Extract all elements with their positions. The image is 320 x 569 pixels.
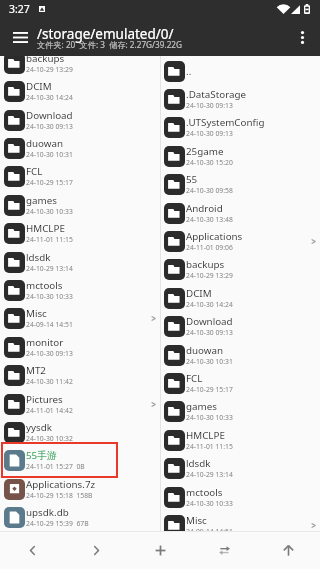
staticText: 24-10-30 13:48 bbox=[186, 215, 233, 224]
button[interactable]: Open navigation menu bbox=[3, 20, 37, 54]
staticText: backups bbox=[186, 258, 225, 271]
button[interactable]: monitor bbox=[0, 333, 160, 361]
button[interactable]: ldsdk bbox=[161, 454, 320, 482]
staticText: 24-10-30 09:13 bbox=[186, 328, 233, 337]
button[interactable]: yysdk bbox=[0, 418, 160, 446]
staticText: mctools bbox=[26, 279, 63, 292]
staticText: 24-10-30 14:24 bbox=[186, 300, 233, 309]
button[interactable]: .UTSystemConfig bbox=[161, 113, 320, 141]
button[interactable]: MT2 bbox=[0, 361, 160, 389]
staticText: 24-10-30 11:42 bbox=[26, 377, 73, 386]
staticText: DCIM bbox=[26, 80, 52, 93]
staticText: 24-10-30 10:33 bbox=[186, 413, 233, 422]
staticText: 24-11-01 11:15 bbox=[186, 442, 233, 451]
staticText: games bbox=[26, 194, 57, 207]
staticText: 24-10-30 09:13 bbox=[186, 101, 233, 110]
staticText: 24-10-30 10:33 bbox=[26, 292, 73, 301]
button[interactable]: HMCLPE bbox=[161, 426, 320, 454]
staticText: .UTSystemConfig bbox=[186, 116, 265, 129]
staticText: Applications bbox=[186, 230, 243, 243]
button[interactable]: FCL bbox=[161, 369, 320, 397]
staticText: 24-11-01 09:06 bbox=[186, 243, 233, 252]
staticText: MT2 bbox=[26, 364, 46, 377]
staticText: 24-09-14 14:51 bbox=[26, 320, 73, 329]
staticText: ldsdk bbox=[186, 457, 211, 470]
staticText: /storage/emulated/0/ bbox=[37, 25, 174, 43]
button[interactable]: duowan bbox=[161, 341, 320, 369]
button[interactable]: 55手游 bbox=[0, 446, 160, 474]
staticText: Download bbox=[186, 315, 233, 328]
staticText: 24-10-29 13:14 bbox=[186, 470, 233, 479]
button[interactable]: .. bbox=[161, 57, 320, 85]
button[interactable]: games bbox=[161, 397, 320, 425]
staticText: 3:27 bbox=[9, 2, 30, 16]
staticText: 24-10-30 09:13 bbox=[26, 122, 73, 131]
staticText: 25game bbox=[186, 145, 224, 158]
staticText: 24-10-30 14:24 bbox=[26, 93, 73, 102]
staticText: .DataStorage bbox=[186, 88, 247, 101]
staticText: 24-09-14 14:51 bbox=[186, 527, 233, 531]
button[interactable]: Transfer bbox=[192, 531, 256, 569]
button[interactable]: backups bbox=[0, 56, 160, 77]
staticText: 24-10-29 15:17 bbox=[186, 385, 233, 394]
button[interactable]: HMCLPE bbox=[0, 219, 160, 247]
staticText: 24-10-30 09:58 bbox=[186, 186, 233, 195]
staticText: 24-10-30 09:13 bbox=[186, 129, 233, 138]
button[interactable]: Pictures bbox=[0, 390, 160, 418]
button[interactable]: Up bbox=[256, 531, 320, 569]
button[interactable]: Android bbox=[161, 199, 320, 227]
button[interactable]: duowan bbox=[0, 134, 160, 162]
button[interactable]: 25game bbox=[161, 142, 320, 170]
staticText: 24-10-29 15:17 bbox=[26, 178, 73, 187]
staticText: 24-10-30 10:31 bbox=[186, 357, 233, 366]
button[interactable]: Back bbox=[0, 531, 64, 569]
staticText: 24-10-30 09:13 bbox=[26, 349, 73, 358]
button[interactable]: Forward bbox=[64, 531, 128, 569]
staticText: 24-10-29 13:29 bbox=[26, 65, 73, 74]
button[interactable]: Add bbox=[128, 531, 192, 569]
staticText: 24-10-29 15:18 158B bbox=[26, 491, 93, 500]
button[interactable]: ldsdk bbox=[0, 248, 160, 276]
staticText: Android bbox=[186, 202, 223, 215]
staticText: Download bbox=[26, 109, 73, 122]
staticText: FCL bbox=[26, 165, 43, 178]
button[interactable]: games bbox=[0, 191, 160, 219]
staticText: HMCLPE bbox=[186, 429, 225, 442]
button[interactable]: Download bbox=[0, 106, 160, 134]
staticText: backups bbox=[26, 56, 65, 65]
staticText: FCL bbox=[186, 372, 203, 385]
button[interactable]: DCIM bbox=[0, 77, 160, 105]
button[interactable]: FCL bbox=[0, 162, 160, 190]
staticText: 24-11-01 14:42 bbox=[26, 406, 73, 415]
button[interactable]: 55 bbox=[161, 170, 320, 198]
staticText: Pictures bbox=[26, 393, 63, 406]
button[interactable]: Misc bbox=[0, 304, 160, 332]
staticText: 24-10-29 15:39 67B bbox=[26, 519, 89, 528]
staticText: 24-11-01 15:27 0B bbox=[26, 462, 85, 471]
staticText: duowan bbox=[186, 344, 224, 357]
staticText: yysdk bbox=[26, 421, 52, 434]
button[interactable]: Download bbox=[161, 312, 320, 340]
staticText: duowan bbox=[26, 137, 64, 150]
staticText: mctools bbox=[186, 486, 223, 499]
staticText: ldsdk bbox=[26, 251, 51, 264]
staticText: 24-10-29 13:14 bbox=[26, 264, 73, 273]
staticText: 24-10-29 13:29 bbox=[186, 271, 233, 280]
staticText: DCIM bbox=[186, 287, 212, 300]
button[interactable]: mctools bbox=[0, 276, 160, 304]
staticText: 24-10-30 10:33 bbox=[186, 499, 233, 508]
staticText: .. bbox=[186, 65, 192, 78]
button[interactable]: .DataStorage bbox=[161, 85, 320, 113]
button[interactable]: Misc bbox=[161, 511, 320, 531]
staticText: HMCLPE bbox=[26, 222, 65, 235]
staticText: Misc bbox=[186, 514, 207, 527]
button[interactable]: More options bbox=[285, 20, 319, 54]
button[interactable]: DCIM bbox=[161, 284, 320, 312]
button[interactable]: upsdk.db bbox=[0, 503, 160, 531]
button[interactable]: Applications.7z bbox=[0, 475, 160, 503]
staticText: 文件夹: 20 文件: 3 储存: 2.27G/39.22G bbox=[37, 39, 182, 50]
button[interactable]: backups bbox=[161, 255, 320, 283]
staticText: upsdk.db bbox=[26, 506, 69, 519]
button[interactable]: Applications bbox=[161, 227, 320, 255]
button[interactable]: mctools bbox=[161, 483, 320, 511]
